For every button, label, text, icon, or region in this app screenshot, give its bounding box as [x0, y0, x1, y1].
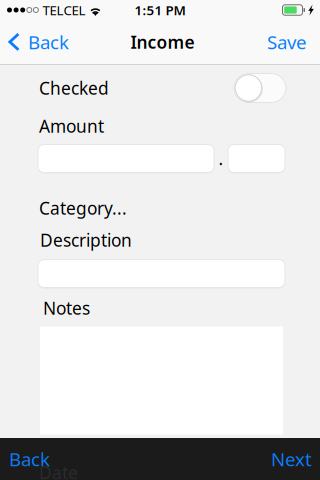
- button[interactable]: Back: [0, 438, 60, 480]
- staticText: Income: [130, 30, 194, 53]
- button[interactable]: Text field: [228, 144, 285, 172]
- staticText: Back: [9, 447, 50, 471]
- staticText: Notes: [43, 297, 90, 320]
- staticText: Description: [40, 228, 132, 251]
- button[interactable]: Category...: [0, 196, 127, 219]
- button[interactable]: Save: [255, 20, 320, 64]
- staticText: Save: [267, 30, 307, 54]
- staticText: Amount: [39, 114, 104, 137]
- staticText: 1:51 PM: [134, 1, 185, 19]
- staticText: Next: [271, 447, 312, 471]
- staticText: .: [218, 147, 223, 170]
- button[interactable]: Text field: [38, 260, 285, 288]
- button[interactable]: Checked: [234, 73, 286, 102]
- staticText: Back: [28, 30, 69, 54]
- button[interactable]: Next: [261, 438, 320, 480]
- button[interactable]: Text field: [38, 144, 214, 172]
- staticText: Category...: [39, 196, 127, 219]
- staticText: TELCEL: [42, 1, 85, 19]
- staticText: Checked: [39, 76, 109, 99]
- staticText: Date: [39, 461, 78, 480]
- button[interactable]: Back: [0, 20, 79, 64]
